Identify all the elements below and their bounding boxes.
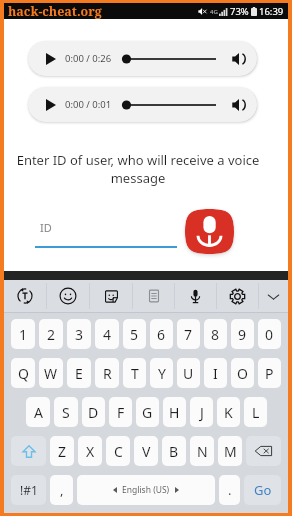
button[interactable]: F — [109, 397, 132, 427]
staticText: 1 — [19, 325, 28, 344]
button[interactable]: E — [67, 358, 91, 388]
button[interactable]: Z — [50, 436, 74, 466]
button[interactable]: Backspace — [246, 436, 281, 466]
button[interactable]: Settings — [217, 280, 258, 312]
staticText: P — [265, 364, 274, 383]
staticText: I — [213, 364, 218, 383]
button[interactable]: W — [39, 358, 63, 388]
button[interactable]: Voice input — [175, 280, 216, 312]
button[interactable]: Stickers — [90, 280, 132, 312]
button[interactable]: A — [26, 397, 50, 427]
button[interactable]: V — [134, 436, 158, 466]
button[interactable]: Space, English (US) — [77, 475, 215, 505]
staticText: 6 — [157, 325, 166, 344]
button[interactable]: N — [190, 436, 214, 466]
staticText: S — [62, 403, 70, 422]
staticText: 0:00 / 0:26 — [65, 52, 112, 65]
button[interactable]: 6 — [150, 319, 173, 349]
staticText: Z — [58, 442, 67, 461]
button[interactable]: Collapse keyboard — [259, 280, 288, 312]
staticText: M — [224, 442, 237, 461]
button[interactable]: Y — [150, 358, 173, 388]
staticText: , — [60, 481, 64, 499]
staticText: . — [228, 481, 232, 499]
staticText: V — [142, 442, 151, 461]
staticText: Go — [254, 481, 272, 499]
staticText: C — [114, 442, 123, 461]
button[interactable]: M — [218, 436, 242, 466]
button[interactable]: 4 — [95, 319, 119, 349]
button[interactable]: 9 — [231, 319, 254, 349]
staticText: 16:39 — [259, 5, 284, 18]
staticText: English (US) — [122, 484, 170, 496]
staticText: N — [197, 442, 208, 461]
button[interactable]: Go — [244, 475, 281, 505]
staticText: hack-cheat.org — [8, 3, 102, 19]
staticText: X — [86, 442, 95, 461]
button[interactable]: T — [123, 358, 146, 388]
button[interactable]: I — [204, 358, 227, 388]
button[interactable]: R — [95, 358, 119, 388]
button[interactable]: P — [258, 358, 281, 388]
staticText: L — [252, 403, 260, 422]
staticText: J — [200, 403, 204, 422]
button[interactable]: 0:00 / 0:01 — [28, 87, 257, 122]
button[interactable]: Emoji — [47, 280, 89, 312]
button[interactable]: Translate — [4, 280, 46, 312]
staticText: A — [34, 403, 43, 422]
staticText: 5 — [130, 325, 139, 344]
staticText: 2 — [47, 325, 56, 344]
button[interactable]: K — [217, 397, 240, 427]
staticText: 4 — [103, 325, 112, 344]
button[interactable]: Record voice message — [185, 209, 234, 254]
staticText: Y — [158, 364, 166, 383]
button[interactable]: 8 — [204, 319, 227, 349]
button[interactable]: L — [244, 397, 267, 427]
button[interactable]: 3 — [67, 319, 91, 349]
button[interactable]: S — [54, 397, 78, 427]
staticText: !#1 — [20, 482, 38, 498]
staticText: T — [131, 364, 139, 383]
button[interactable]: 0 — [258, 319, 281, 349]
button[interactable]: B — [162, 436, 186, 466]
button[interactable]: H — [163, 397, 186, 427]
staticText: H — [169, 403, 180, 422]
staticText: Q — [18, 364, 29, 383]
staticText: 73% — [230, 5, 249, 18]
staticText: B — [169, 442, 179, 461]
staticText: 7 — [184, 325, 193, 344]
button[interactable]: , — [50, 475, 73, 505]
staticText: 3 — [75, 325, 84, 344]
button[interactable]: Clipboard — [133, 280, 174, 312]
staticText: U — [183, 364, 194, 383]
button[interactable]: 2 — [39, 319, 63, 349]
button[interactable]: !#1 — [11, 475, 46, 505]
staticText: 8 — [211, 325, 220, 344]
staticText: 0 — [265, 325, 274, 344]
staticText: F — [117, 403, 125, 422]
button[interactable]: 7 — [177, 319, 200, 349]
button[interactable]: G — [136, 397, 159, 427]
button[interactable]: 5 — [123, 319, 146, 349]
button[interactable]: C — [106, 436, 130, 466]
staticText: 0:00 / 0:01 — [65, 98, 112, 111]
button[interactable]: X — [78, 436, 102, 466]
staticText: G — [142, 403, 153, 422]
button[interactable]: 1 — [11, 319, 35, 349]
staticText: W — [44, 364, 58, 383]
staticText: 4G — [210, 8, 218, 16]
button[interactable]: D — [82, 397, 105, 427]
button[interactable]: J — [190, 397, 213, 427]
staticText: D — [88, 403, 99, 422]
button[interactable]: . — [219, 475, 240, 505]
button[interactable]: Q — [11, 358, 35, 388]
button[interactable]: 0:00 / 0:26 — [28, 41, 257, 76]
staticText: K — [224, 403, 233, 422]
staticText: O — [237, 364, 248, 383]
staticText: R — [103, 364, 112, 383]
button[interactable]: Shift — [11, 436, 46, 466]
staticText: E — [75, 364, 83, 383]
button[interactable]: O — [231, 358, 254, 388]
staticText: 9 — [238, 325, 247, 344]
button[interactable]: U — [177, 358, 200, 388]
